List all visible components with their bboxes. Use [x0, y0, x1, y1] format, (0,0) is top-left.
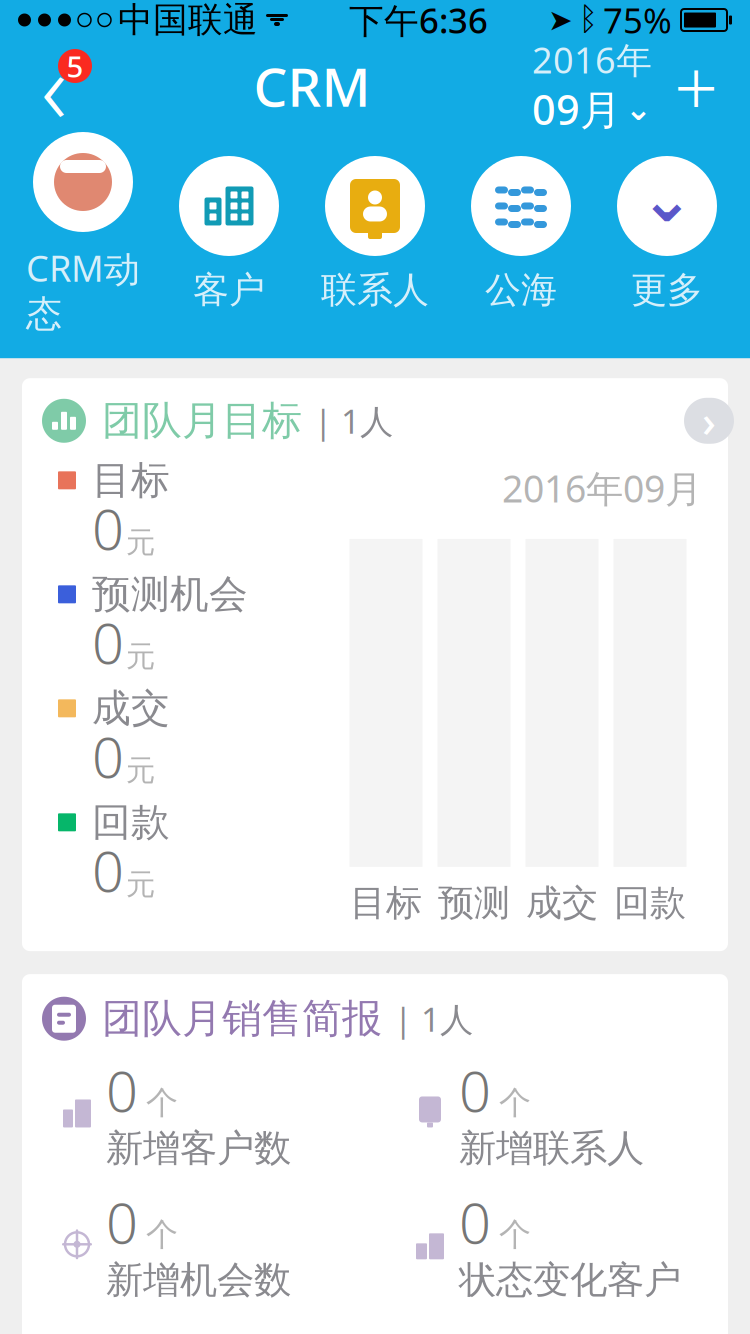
staticText: 个: [499, 1083, 531, 1122]
staticText: 团队月销售简报: [102, 994, 382, 1043]
staticText: 5: [66, 46, 83, 85]
staticText: 0: [459, 1053, 491, 1127]
staticText: 更多: [631, 268, 703, 312]
staticText: +: [674, 35, 718, 137]
button[interactable]: CRM动态: [10, 132, 156, 336]
button[interactable]: 新增: [658, 48, 734, 124]
staticText: 回款: [92, 799, 170, 846]
staticText: 客户: [193, 268, 265, 312]
staticText: 元: [126, 524, 155, 560]
staticText: 公海: [485, 268, 557, 312]
staticText: 预测机会: [92, 571, 248, 618]
staticText: 新增联系人: [459, 1125, 644, 1171]
staticText: 75%: [603, 0, 672, 43]
staticText: 0: [459, 1185, 491, 1259]
staticText: CRM: [253, 51, 370, 121]
button[interactable]: 团队月销售简报: [22, 974, 728, 1334]
staticText: 0: [92, 719, 124, 794]
staticText: 成交: [92, 685, 170, 732]
staticText: 个: [146, 1215, 178, 1254]
staticText: 0: [106, 1185, 138, 1259]
staticText: 0: [92, 833, 124, 908]
staticText: 新增客户数: [106, 1125, 291, 1171]
button[interactable]: 联系人: [302, 156, 448, 312]
staticText: CRM动态: [26, 244, 140, 336]
staticText: 元: [126, 638, 155, 674]
button[interactable]: 2016年: [532, 36, 658, 136]
staticText: 成交: [526, 881, 598, 925]
button[interactable]: 公海: [448, 156, 594, 312]
staticText: 目标: [350, 881, 422, 925]
staticText: 状态变化客户: [459, 1257, 681, 1303]
staticText: | 1人: [394, 997, 473, 1041]
button[interactable]: ⌄: [594, 156, 740, 312]
staticText: ⌄: [625, 91, 652, 127]
staticText: ⌄: [640, 163, 694, 235]
staticText: 个: [499, 1215, 531, 1254]
staticText: 联系人: [321, 268, 429, 312]
button[interactable]: 团队月目标: [22, 378, 728, 951]
staticText: 个: [146, 1083, 178, 1122]
staticText: 回款: [614, 881, 686, 925]
staticText: 预测: [438, 881, 510, 925]
staticText: 团队月目标: [102, 396, 302, 445]
staticText: 0: [92, 491, 124, 566]
staticText: | 1人: [314, 399, 393, 443]
staticText: 2016年09月: [502, 463, 702, 513]
staticText: 新增机会数: [106, 1257, 291, 1303]
staticText: ›: [702, 392, 716, 449]
staticText: ᛒ: [578, 4, 597, 36]
staticText: 元: [126, 752, 155, 788]
staticText: ➤: [548, 3, 573, 37]
staticText: 目标: [92, 457, 170, 504]
staticText: 下午6:36: [349, 0, 488, 43]
button[interactable]: 返回: [16, 46, 92, 126]
staticText: 0: [106, 1053, 138, 1127]
button[interactable]: 客户: [156, 156, 302, 312]
staticText: 2016年: [532, 36, 652, 83]
staticText: 0: [92, 605, 124, 680]
staticText: 中国联通: [118, 0, 258, 41]
staticText: ‹: [41, 20, 67, 151]
staticText: 元: [126, 866, 155, 902]
staticText: 09月: [532, 81, 621, 136]
